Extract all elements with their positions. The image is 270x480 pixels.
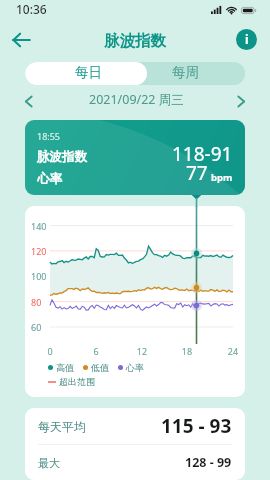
staticText: 120 (31, 245, 47, 257)
staticText: 2021/09/22 周三 (89, 91, 184, 108)
staticText: 心率 (37, 171, 62, 187)
button[interactable]: 每日 (25, 62, 147, 85)
staticText: 118-91 (172, 141, 233, 167)
staticText: 高值 (56, 362, 74, 373)
button[interactable]: Next day (229, 90, 254, 112)
staticText: 18 (177, 345, 197, 357)
staticText: 脉波指数 (37, 149, 87, 165)
staticText: 每日 (75, 64, 102, 81)
staticText: 12 (132, 345, 152, 357)
staticText: 超出范围 (59, 376, 95, 387)
button[interactable]: 每天平均 (25, 408, 245, 444)
staticText: 140 (31, 220, 47, 232)
button[interactable]: 最大 (25, 445, 245, 480)
staticText: 128 - 99 (185, 454, 232, 471)
staticText: 77 (186, 160, 208, 186)
button[interactable]: Previous day (16, 90, 41, 112)
staticText: 60 (31, 321, 42, 333)
staticText: 24 (223, 345, 243, 357)
staticText: 最大 (38, 456, 60, 470)
staticText: 低值 (91, 362, 109, 373)
staticText: 115 - 93 (161, 413, 232, 439)
button[interactable]: Info (236, 29, 257, 50)
staticText: i (245, 31, 249, 47)
staticText: 脉波指数 (104, 31, 166, 51)
staticText: 10:36 (16, 1, 47, 17)
staticText: 每天平均 (38, 419, 86, 434)
staticText: bpm (211, 171, 233, 184)
staticText: 0 (40, 345, 60, 357)
button[interactable]: 每周 (147, 62, 245, 85)
staticText: 6 (86, 345, 106, 357)
staticText: 80 (31, 296, 42, 308)
staticText: 每周 (172, 64, 199, 81)
staticText: 心率 (126, 362, 144, 373)
staticText: 100 (31, 270, 47, 282)
button[interactable]: Back (5, 24, 37, 56)
staticText: 18:55 (37, 130, 61, 142)
button[interactable]: 18:55 (25, 120, 245, 195)
